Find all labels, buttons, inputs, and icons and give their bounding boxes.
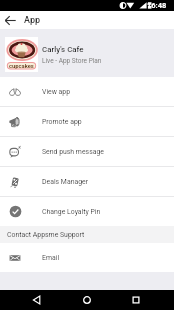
button[interactable]: Send push message	[0, 137, 174, 167]
button[interactable]: Recent apps	[126, 290, 146, 310]
staticText: Carly's Cafe	[42, 45, 84, 54]
staticText: Contact Appsme Support	[7, 231, 85, 239]
button[interactable]: Back	[27, 290, 47, 310]
staticText: View app	[42, 88, 71, 96]
button[interactable]: Email	[0, 243, 174, 272]
button[interactable]: Home	[77, 290, 97, 310]
staticText: Live - App Store Plan	[42, 57, 102, 65]
staticText: Change Loyalty Pin	[42, 208, 101, 216]
button[interactable]: Navigate up	[1, 11, 19, 29]
staticText: App	[24, 15, 41, 26]
staticText: Promote app	[42, 118, 82, 126]
staticText: Deals Manager	[42, 178, 89, 186]
button[interactable]: Change Loyalty Pin	[0, 197, 174, 226]
button[interactable]: View app	[0, 77, 174, 107]
button[interactable]: Deals Manager	[0, 167, 174, 197]
staticText: cupcakes	[9, 63, 34, 70]
staticText: Send push message	[42, 148, 104, 156]
staticText: 16:48	[147, 1, 167, 10]
button[interactable]: Promote app	[0, 107, 174, 137]
staticText: Email	[42, 254, 60, 262]
